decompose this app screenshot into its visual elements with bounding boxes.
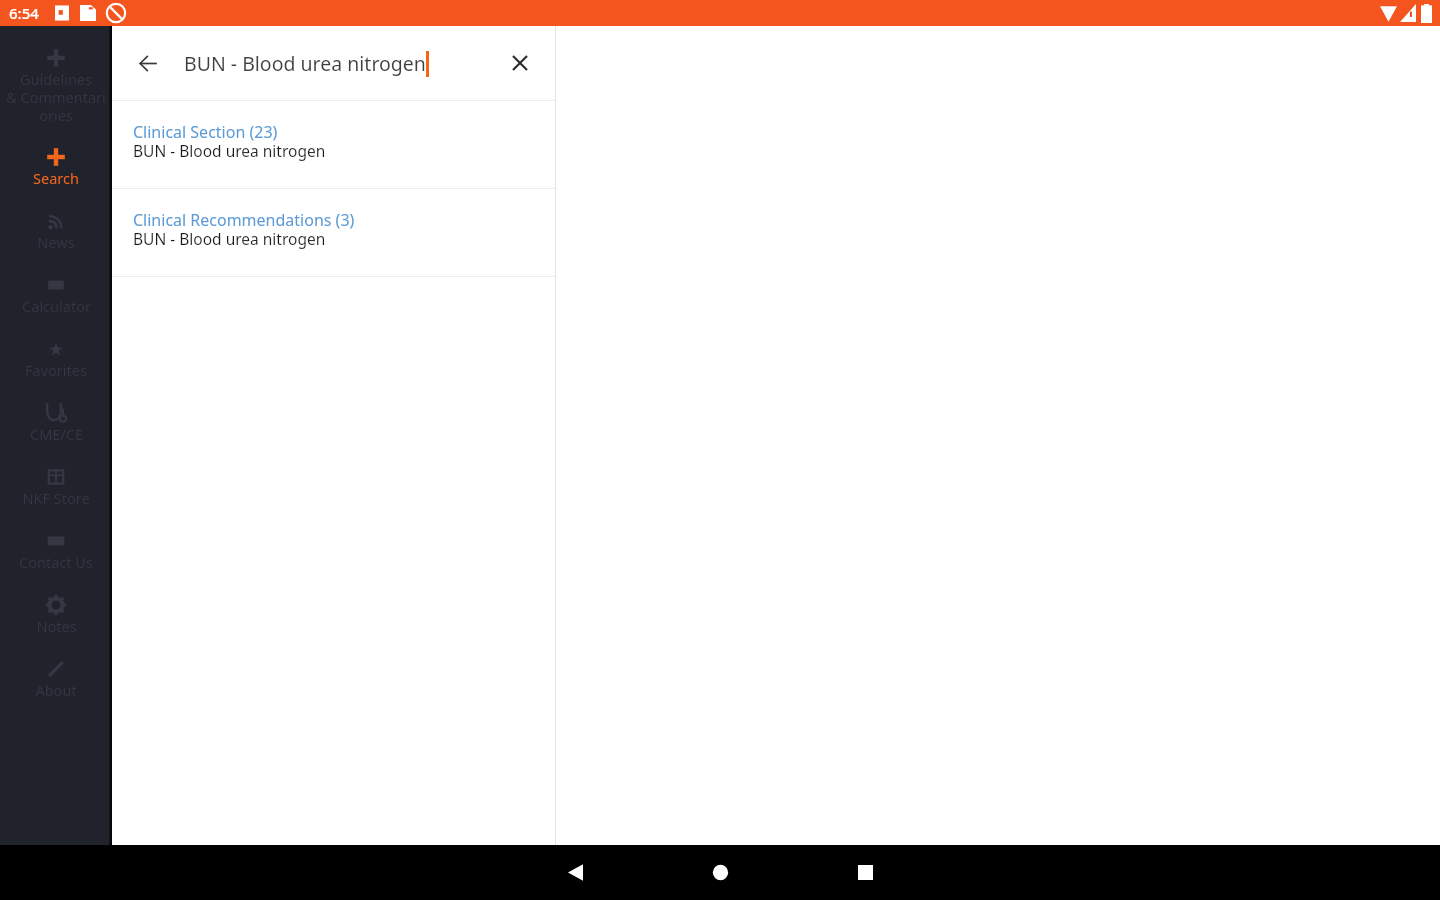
staticText: BUN - Blood urea nitrogen — [133, 228, 326, 249]
button[interactable]: CME/CE — [0, 402, 112, 444]
button[interactable]: Search — [0, 146, 112, 188]
staticText: BUN - Blood urea nitrogen — [133, 140, 326, 161]
staticText: About — [35, 680, 77, 700]
staticText: Clinical Section (23) — [133, 121, 278, 143]
button[interactable]: Clinical Section (23) — [112, 101, 556, 188]
button[interactable]: Back — [503, 845, 648, 900]
staticText: Notes — [36, 616, 77, 636]
button[interactable]: Guidelines & Commentari ories — [0, 47, 112, 125]
button[interactable]: Clinical Recommendations (3) — [112, 189, 556, 276]
button[interactable]: Clear — [500, 43, 540, 83]
staticText: Search — [33, 168, 79, 188]
staticText: NKF Store — [22, 488, 90, 508]
staticText: 6:54 — [9, 3, 39, 23]
staticText: Guidelines & Commentari ories — [6, 69, 106, 125]
button[interactable]: News — [0, 210, 112, 252]
staticText: Contact Us — [19, 552, 93, 572]
button[interactable]: Contact Us — [0, 530, 112, 572]
button[interactable]: NKF Store — [0, 466, 112, 508]
button[interactable]: About — [0, 658, 112, 700]
button[interactable]: Favorites — [0, 338, 112, 380]
button[interactable]: Back — [130, 45, 166, 81]
button[interactable]: Home — [648, 845, 793, 900]
staticText: Favorites — [25, 360, 87, 380]
staticText: BUN - Blood urea nitrogen — [184, 50, 426, 77]
staticText: CME/CE — [30, 424, 83, 444]
button[interactable]: Recents — [793, 845, 938, 900]
button[interactable]: Calculator — [0, 274, 112, 316]
button[interactable]: Notes — [0, 594, 112, 636]
staticText: Calculator — [22, 296, 91, 316]
staticText: Clinical Recommendations (3) — [133, 209, 355, 231]
staticText: News — [37, 232, 75, 252]
